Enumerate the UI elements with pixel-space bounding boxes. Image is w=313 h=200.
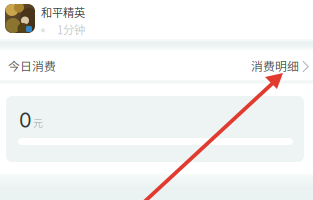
staticText: 元 [33,115,43,130]
staticText: 和平精英 [41,4,85,20]
button[interactable]: 今日消费 [0,50,313,81]
staticText: 消费明细 [251,57,299,74]
button[interactable]: 和平精英 [5,4,313,39]
staticText: 0 [19,108,32,132]
staticText: 今日消费 [8,57,56,74]
staticText: 1分钟 [57,21,85,38]
